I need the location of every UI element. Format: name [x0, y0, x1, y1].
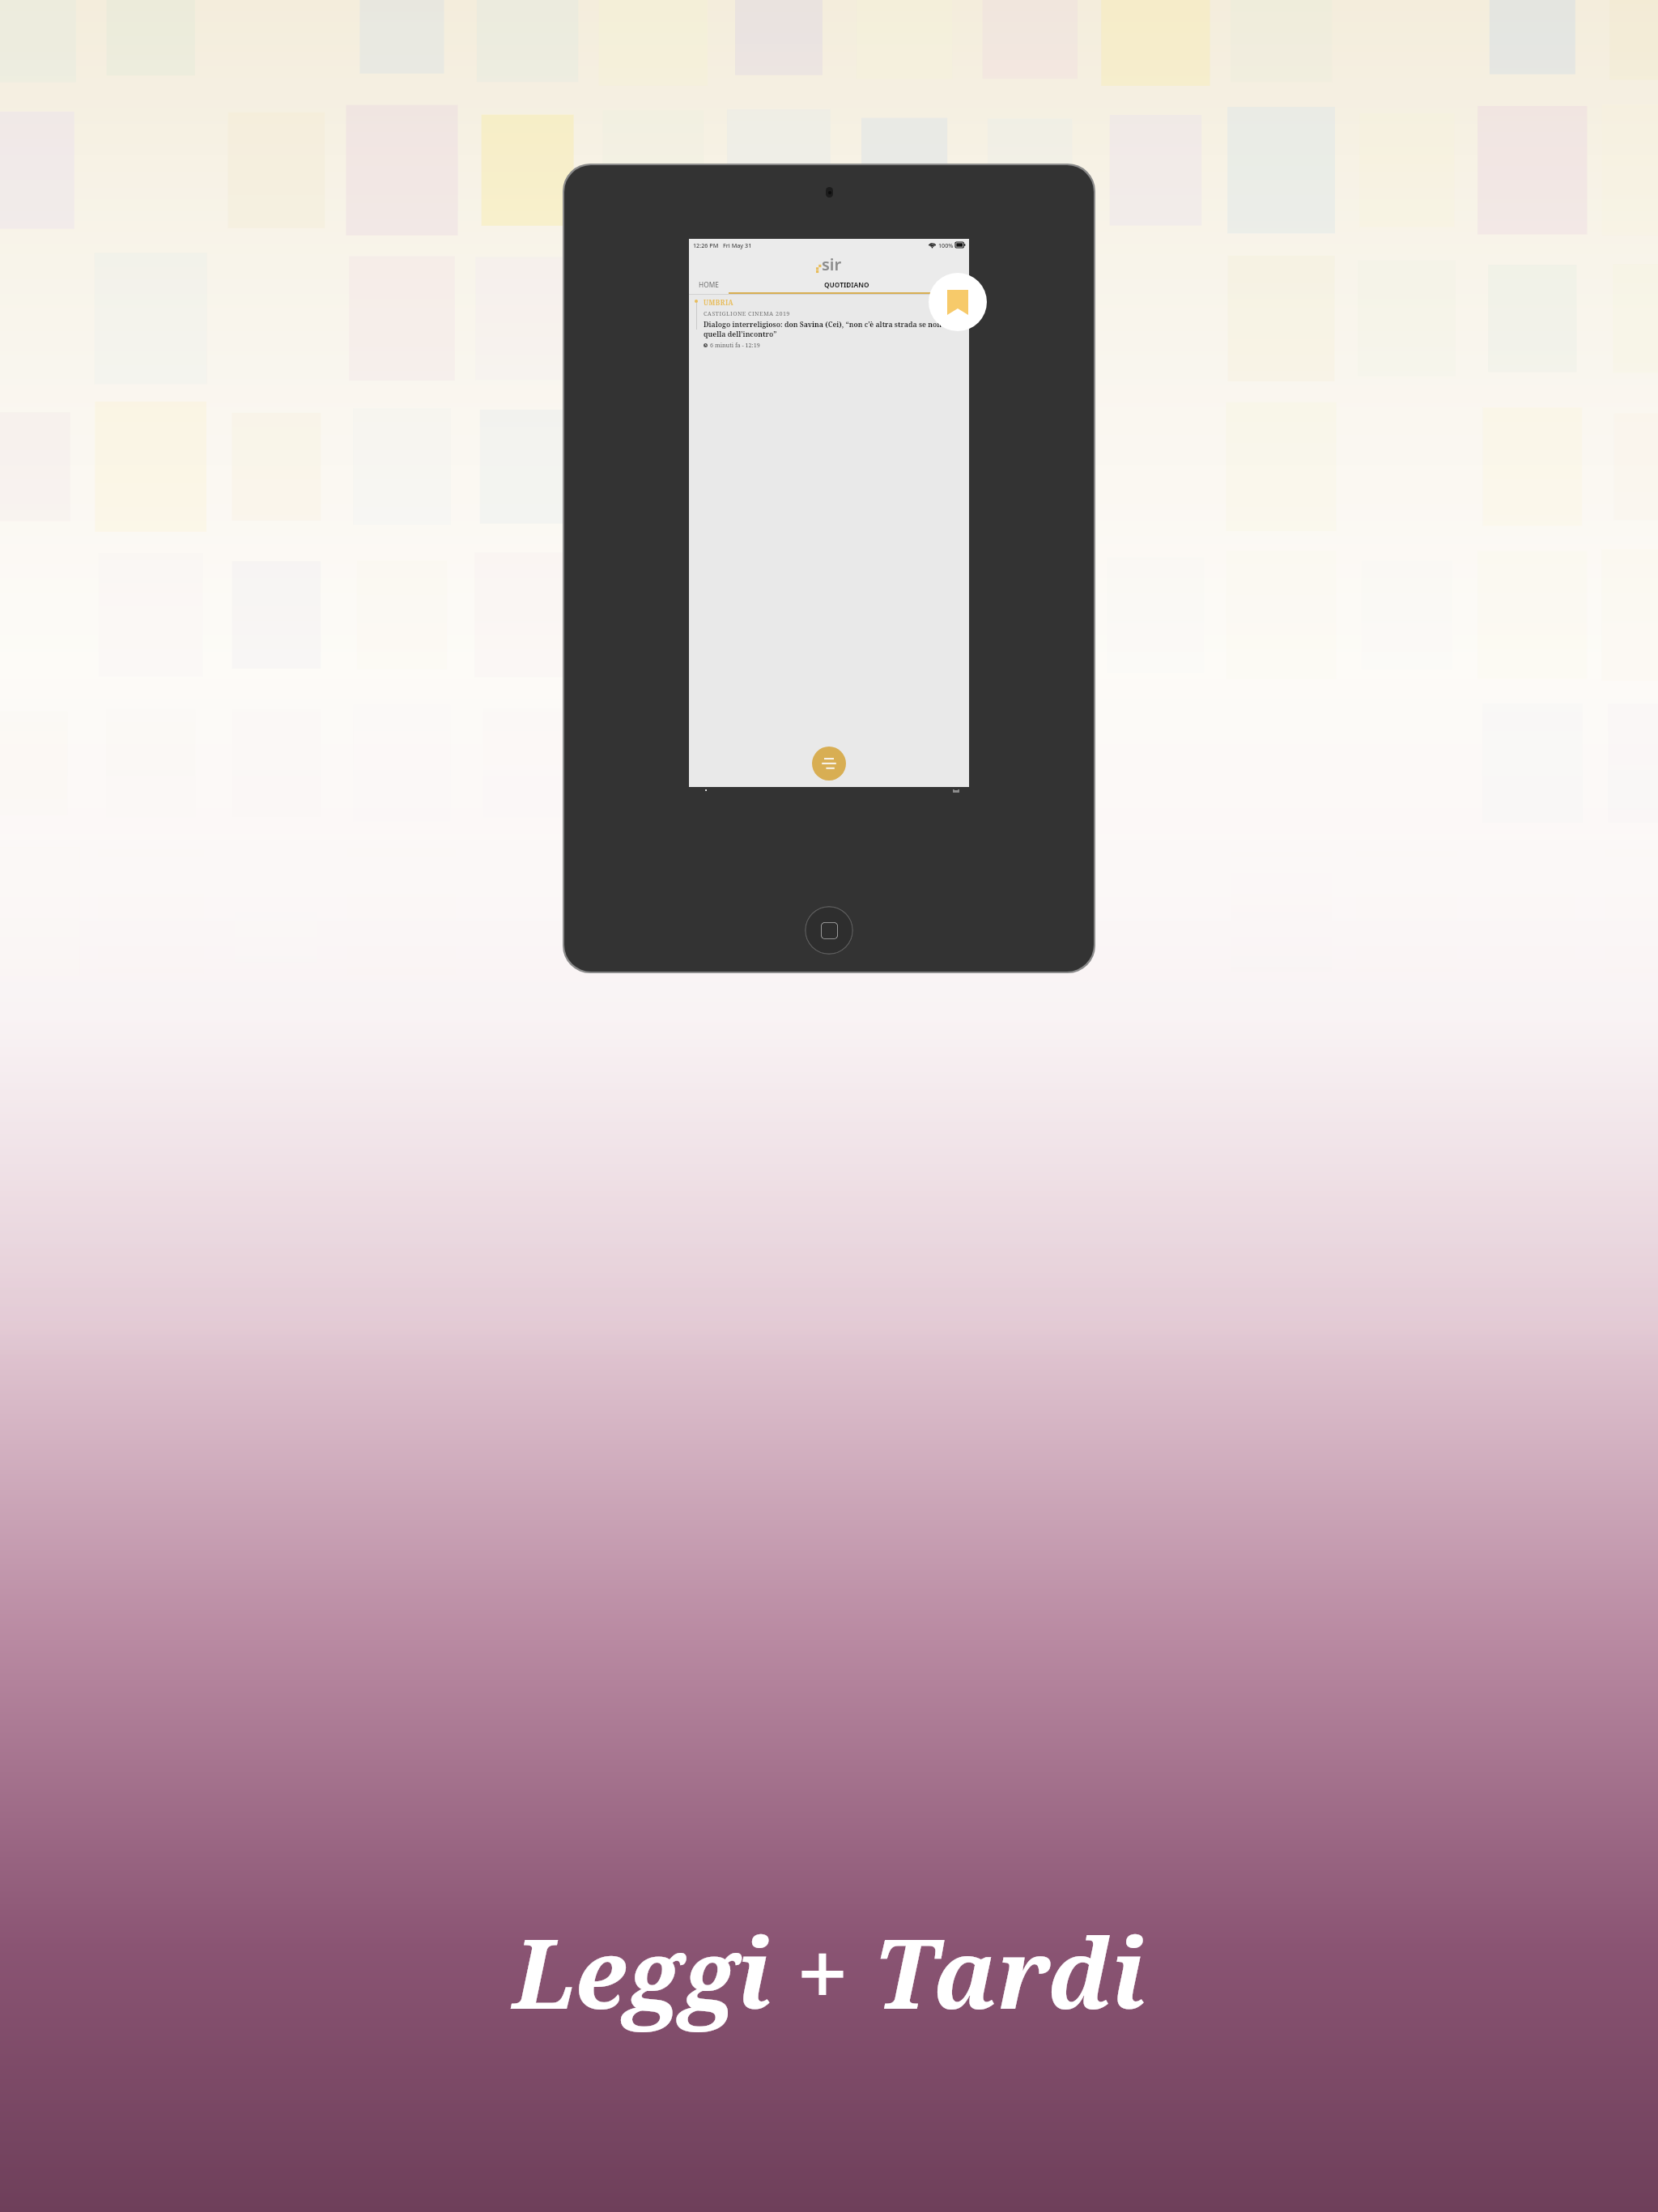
staticText: QUOTIDIANO: [824, 280, 869, 289]
staticText: Fri May 31: [723, 241, 752, 249]
staticText: 100%: [938, 241, 954, 249]
staticText: sir: [822, 253, 842, 275]
staticText: Leggi + Tardi: [512, 1907, 1146, 2037]
staticText: UMBRIA: [704, 298, 734, 307]
button[interactable]: HOME: [694, 277, 724, 294]
button[interactable]: Saved articles: [929, 273, 987, 331]
button[interactable]: QUOTIDIANO: [724, 277, 969, 294]
staticText: HOME: [699, 280, 719, 289]
button[interactable]: Bookmark: [950, 299, 963, 312]
staticText: CASTIGLIONE CINEMA 2019: [704, 309, 790, 317]
staticText: 12:26 PM: [693, 241, 719, 249]
button[interactable]: UMBRIA: [689, 295, 969, 787]
button[interactable]: Home: [805, 906, 853, 955]
button[interactable]: Filter: [812, 747, 846, 781]
staticText: Dialogo interreligioso: don Savina (Cei)…: [704, 320, 950, 338]
staticText: 6 minuti fa - 12:19: [710, 341, 760, 349]
